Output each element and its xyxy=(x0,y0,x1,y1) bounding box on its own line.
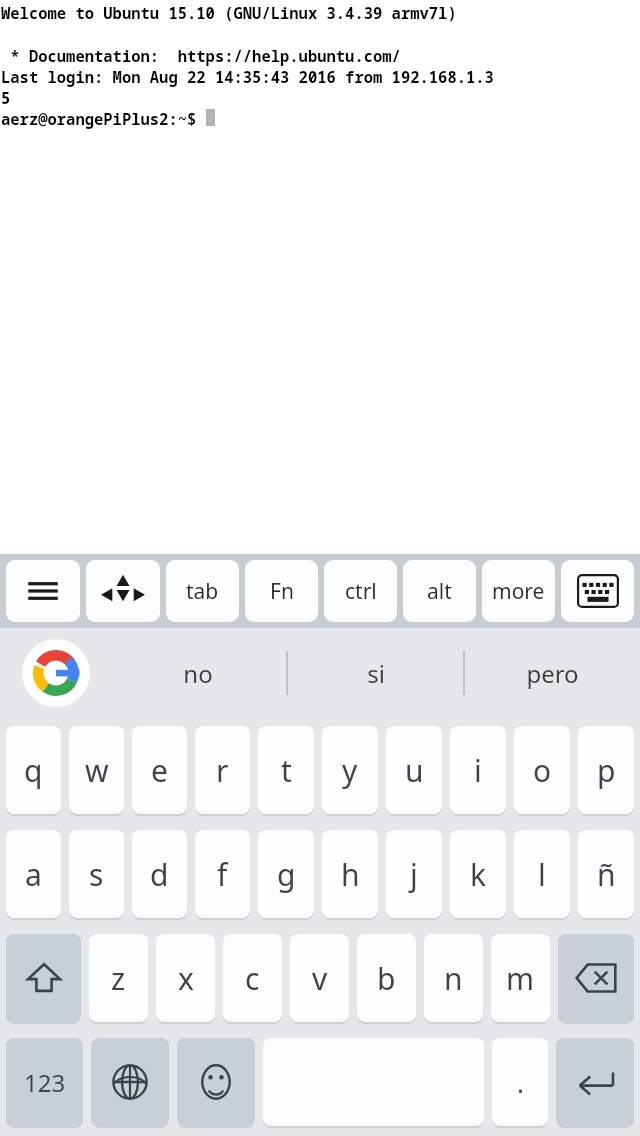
staticText: f xyxy=(217,854,228,895)
staticText: d xyxy=(150,854,169,895)
staticText: s xyxy=(89,854,104,895)
button[interactable]: Menu xyxy=(6,560,80,622)
button[interactable]: Enter xyxy=(556,1038,634,1126)
button[interactable]: Emoji xyxy=(177,1038,255,1126)
staticText: i xyxy=(474,750,482,791)
button[interactable]: x xyxy=(156,934,215,1022)
button[interactable]: alt xyxy=(403,560,476,622)
staticText: z xyxy=(111,958,126,999)
staticText: 5 xyxy=(1,87,11,108)
button[interactable]: pero xyxy=(465,628,640,718)
button[interactable]: c xyxy=(223,934,282,1022)
button[interactable]: n xyxy=(424,934,483,1022)
button[interactable]: j xyxy=(386,830,442,918)
button[interactable]: r xyxy=(195,726,250,814)
button[interactable]: o xyxy=(514,726,570,814)
staticText: x xyxy=(178,958,194,999)
button[interactable]: h xyxy=(322,830,378,918)
staticText: tab xyxy=(186,577,219,606)
button[interactable]: f xyxy=(195,830,250,918)
staticText: si xyxy=(367,657,385,690)
staticText: pero xyxy=(526,657,579,690)
button[interactable]: more xyxy=(482,560,555,622)
staticText: Welcome to Ubuntu 15.10 (GNU/Linux 3.4.3… xyxy=(1,2,457,23)
button[interactable]: z xyxy=(89,934,148,1022)
staticText: . xyxy=(517,1065,524,1100)
staticText: 123 xyxy=(24,1066,66,1099)
button[interactable]: b xyxy=(357,934,416,1022)
staticText: y xyxy=(342,750,358,791)
button[interactable]: s xyxy=(69,830,124,918)
staticText: o xyxy=(533,750,552,791)
button[interactable]: l xyxy=(514,830,570,918)
button[interactable]: Arrow keys xyxy=(86,560,160,622)
button[interactable]: i xyxy=(450,726,506,814)
button[interactable]: y xyxy=(322,726,378,814)
staticText: k xyxy=(470,854,487,895)
button[interactable]: no xyxy=(110,628,286,718)
button[interactable]: . xyxy=(492,1038,548,1126)
staticText: n xyxy=(444,958,463,999)
staticText: w xyxy=(85,750,109,791)
staticText: v xyxy=(312,958,328,999)
staticText: Fn xyxy=(270,577,294,606)
button[interactable]: v xyxy=(290,934,349,1022)
button[interactable]: d xyxy=(132,830,187,918)
button[interactable]: p xyxy=(578,726,634,814)
button[interactable]: Fn xyxy=(245,560,318,622)
staticText: * Documentation: https://help.ubuntu.com… xyxy=(1,45,401,66)
staticText: r xyxy=(216,750,229,791)
staticText: aerz@orangePiPlus2:~$ xyxy=(1,108,206,129)
button[interactable]: e xyxy=(132,726,187,814)
button[interactable]: Hide keyboard xyxy=(561,560,634,622)
button[interactable]: 123 xyxy=(6,1038,83,1126)
staticText: b xyxy=(377,958,396,999)
staticText: Last login: Mon Aug 22 14:35:43 2016 fro… xyxy=(1,66,494,87)
button[interactable]: Backspace xyxy=(558,934,634,1022)
button[interactable]: m xyxy=(491,934,550,1022)
staticText: ñ xyxy=(597,854,616,895)
button[interactable]: Google xyxy=(22,639,90,707)
staticText: t xyxy=(281,750,292,791)
staticText: e xyxy=(151,750,168,791)
staticText: g xyxy=(277,854,296,895)
button[interactable]: ctrl xyxy=(324,560,397,622)
button[interactable]: q xyxy=(6,726,61,814)
staticText: q xyxy=(24,750,43,791)
staticText: no xyxy=(183,657,213,690)
button[interactable]: Shift xyxy=(6,934,81,1022)
staticText: l xyxy=(538,854,546,895)
staticText: h xyxy=(341,854,360,895)
button[interactable]: w xyxy=(69,726,124,814)
staticText: more xyxy=(492,577,545,606)
staticText: j xyxy=(410,854,418,895)
staticText: p xyxy=(597,750,616,791)
button[interactable]: Change language xyxy=(91,1038,169,1126)
button[interactable]: t xyxy=(258,726,314,814)
staticText: m xyxy=(506,958,535,999)
staticText: u xyxy=(405,750,424,791)
button[interactable]: ñ xyxy=(578,830,634,918)
staticText: a xyxy=(25,854,42,895)
staticText: ctrl xyxy=(345,577,377,606)
button[interactable]: si xyxy=(288,628,463,718)
button[interactable]: tab xyxy=(166,560,239,622)
staticText: alt xyxy=(427,577,452,606)
button[interactable]: k xyxy=(450,830,506,918)
staticText: c xyxy=(245,958,260,999)
button[interactable]: a xyxy=(6,830,61,918)
button[interactable]: u xyxy=(386,726,442,814)
button[interactable]: g xyxy=(258,830,314,918)
